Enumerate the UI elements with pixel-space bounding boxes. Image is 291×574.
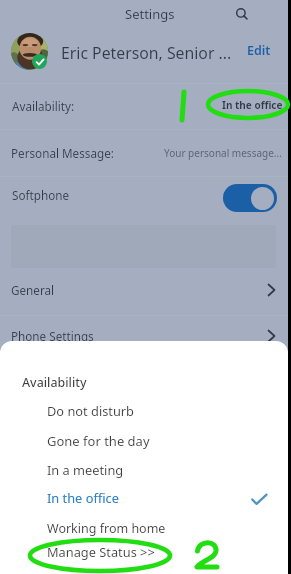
button[interactable] bbox=[0, 538, 288, 566]
staticText: In the office bbox=[47, 489, 119, 506]
staticText: Eric Peterson, Senior ... bbox=[61, 42, 232, 64]
staticText: Phone Settings bbox=[11, 328, 94, 344]
button[interactable] bbox=[0, 427, 288, 455]
button[interactable]: Edit bbox=[243, 38, 274, 58]
staticText: Personal Message: bbox=[11, 145, 114, 161]
staticText: Gone for the day bbox=[47, 432, 150, 450]
button[interactable] bbox=[0, 397, 288, 425]
button[interactable] bbox=[0, 30, 288, 82]
staticText: Edit bbox=[247, 42, 271, 59]
button[interactable] bbox=[0, 515, 288, 543]
button[interactable] bbox=[0, 129, 288, 176]
staticText: In the office bbox=[222, 98, 283, 112]
staticText: Manage Status >> bbox=[47, 543, 155, 560]
button[interactable] bbox=[0, 456, 288, 484]
button[interactable] bbox=[0, 176, 288, 225]
button[interactable]: Search bbox=[230, 2, 256, 28]
staticText: Your personal message... bbox=[164, 146, 282, 160]
staticText: General bbox=[11, 282, 55, 298]
staticText: Settings bbox=[125, 5, 175, 23]
button[interactable] bbox=[0, 315, 288, 341]
staticText: Availability: bbox=[12, 98, 75, 114]
button[interactable] bbox=[0, 83, 288, 129]
staticText: Availability bbox=[22, 374, 87, 391]
staticText: In a meeting bbox=[47, 461, 124, 478]
staticText: Softphone bbox=[12, 187, 70, 203]
staticText: Working from home bbox=[47, 520, 166, 537]
button[interactable] bbox=[0, 269, 288, 315]
button[interactable]: Softphone toggle bbox=[223, 184, 277, 212]
button[interactable] bbox=[0, 484, 288, 512]
staticText: Do not disturb bbox=[47, 402, 134, 419]
